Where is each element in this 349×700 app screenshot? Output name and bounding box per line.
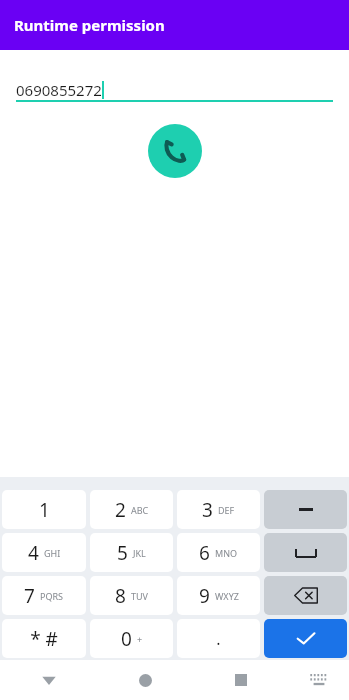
staticText: 7 — [24, 583, 35, 609]
button[interactable]: 7 — [2, 576, 86, 615]
button[interactable]: Home — [97, 660, 193, 700]
button[interactable]: 0 — [90, 619, 173, 658]
staticText: TUV — [131, 590, 148, 602]
staticText: * # — [30, 626, 58, 652]
button[interactable]: Minus — [264, 490, 347, 529]
button[interactable]: 2 — [90, 490, 173, 529]
staticText: 8 — [115, 583, 126, 609]
button[interactable]: . — [177, 619, 260, 658]
button[interactable]: Space — [264, 533, 347, 572]
button[interactable]: Backspace — [264, 576, 347, 615]
button[interactable]: 4 — [2, 533, 86, 572]
staticText: 4 — [28, 540, 39, 566]
staticText: + — [137, 633, 143, 645]
button[interactable]: 8 — [90, 576, 173, 615]
staticText: Runtime permission — [14, 15, 165, 35]
button[interactable]: 6 — [177, 533, 260, 572]
staticText: 2 — [115, 497, 126, 523]
staticText: GHI — [44, 547, 61, 559]
button[interactable]: Call — [148, 124, 202, 178]
button[interactable]: 1 — [2, 490, 86, 529]
button[interactable]: Enter — [264, 619, 347, 658]
staticText: 1 — [39, 497, 50, 523]
button[interactable]: 0690855272 — [16, 72, 333, 100]
staticText: JKL — [133, 547, 146, 559]
staticText: . — [216, 628, 221, 650]
button[interactable]: * # — [2, 619, 86, 658]
button[interactable]: 3 — [177, 490, 260, 529]
staticText: 0 — [121, 626, 132, 652]
staticText: ABC — [131, 504, 149, 516]
button[interactable]: Switch keyboard — [289, 660, 349, 700]
button[interactable]: 5 — [90, 533, 173, 572]
staticText: 9 — [199, 583, 210, 609]
staticText: 0690855272 — [16, 80, 102, 100]
staticText: 5 — [117, 540, 128, 566]
button[interactable]: Recents — [193, 660, 289, 700]
staticText: 3 — [202, 497, 213, 523]
button[interactable]: Back — [0, 660, 97, 700]
staticText: PQRS — [40, 590, 64, 602]
staticText: 6 — [199, 540, 210, 566]
staticText: DEF — [218, 504, 235, 516]
staticText: WXYZ — [215, 590, 239, 602]
staticText: MNO — [215, 547, 238, 559]
button[interactable]: 9 — [177, 576, 260, 615]
